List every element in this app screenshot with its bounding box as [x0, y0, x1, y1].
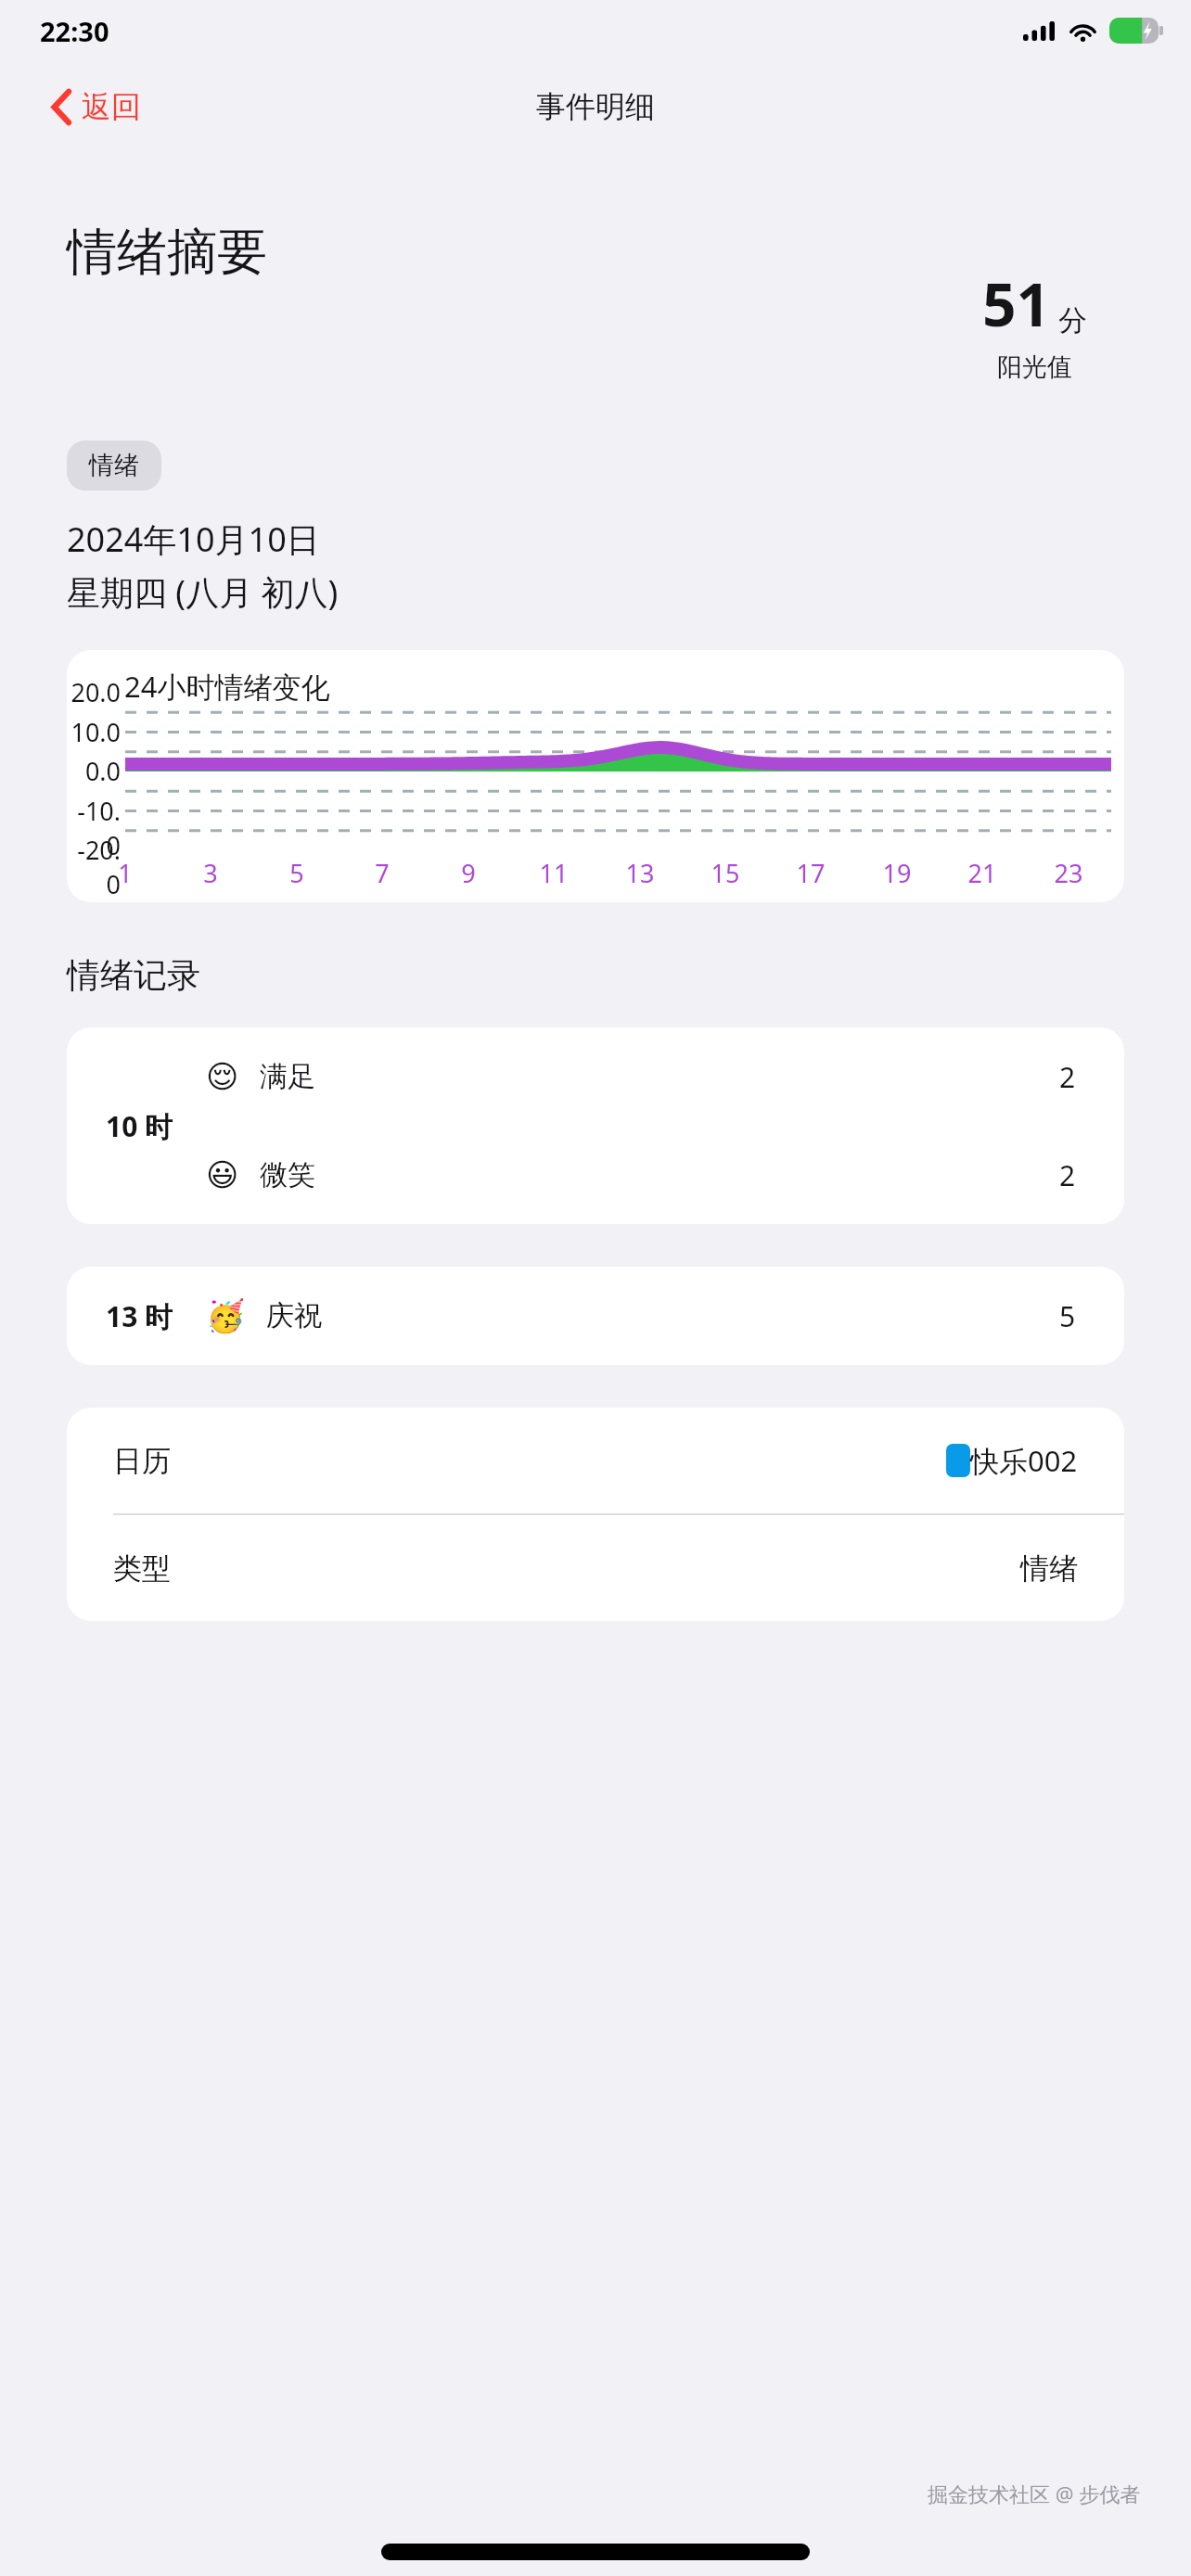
- staticText: 掘金技术社区 @ 步伐者: [928, 2480, 1141, 2507]
- staticText: 庆祝: [266, 1298, 322, 1333]
- other: Battery 67 percent, charging: [1109, 18, 1165, 44]
- staticText: 3: [186, 856, 235, 890]
- staticText: 13 时: [106, 1297, 173, 1335]
- staticText: 22:30: [40, 13, 109, 49]
- staticText: 21: [958, 856, 1006, 890]
- staticText: 日历: [113, 1443, 171, 1479]
- staticText: 24小时情绪变化: [124, 667, 330, 706]
- staticText: 微笑: [260, 1157, 315, 1192]
- staticText: 返回: [82, 88, 141, 125]
- staticText: 阳光值: [997, 351, 1072, 383]
- staticText: 10.0: [67, 715, 121, 749]
- staticText: 星期四 (八月 初八): [67, 569, 339, 615]
- staticText: 满足: [260, 1059, 315, 1094]
- staticText: 2: [1059, 1058, 1076, 1096]
- button[interactable]: 日历: [67, 1408, 1124, 1513]
- staticText: 情绪: [89, 450, 139, 481]
- staticText: 23: [1044, 856, 1093, 890]
- staticText: 9: [444, 856, 493, 890]
- staticText: 15: [701, 856, 749, 890]
- staticText: -20.0: [67, 833, 121, 901]
- staticText: 1: [101, 856, 149, 890]
- button[interactable]: 情绪: [67, 440, 161, 491]
- other: Cellular signal: [1023, 21, 1055, 41]
- staticText: 情绪: [1020, 1550, 1078, 1587]
- staticText: 5: [273, 856, 321, 890]
- staticText: 11: [530, 856, 578, 890]
- button[interactable]: 返回: [45, 81, 148, 133]
- staticText: 😌: [206, 1058, 239, 1095]
- button[interactable]: 24小时情绪变化: [67, 650, 1124, 902]
- button[interactable]: 😌: [67, 1027, 1124, 1126]
- staticText: 0.0: [67, 754, 121, 788]
- staticText: -10.0: [67, 794, 121, 862]
- staticText: 情绪记录: [67, 954, 200, 996]
- staticText: 事件明细: [536, 88, 655, 125]
- staticText: 😃: [206, 1156, 239, 1193]
- button[interactable]: 😃: [67, 1126, 1124, 1224]
- staticText: 10 时: [106, 1107, 173, 1145]
- staticText: 20.0: [67, 675, 121, 709]
- staticText: 17: [787, 856, 835, 890]
- staticText: 7: [358, 856, 406, 890]
- staticText: 分: [1058, 302, 1087, 338]
- staticText: 13: [616, 856, 664, 890]
- button[interactable]: 类型: [67, 1515, 1124, 1621]
- staticText: 🥳: [206, 1297, 246, 1334]
- staticText: 2024年10月10日: [67, 516, 320, 562]
- staticText: 19: [873, 856, 921, 890]
- staticText: 51: [982, 263, 1051, 344]
- staticText: 2: [1059, 1156, 1076, 1194]
- other: Wi-Fi: [1069, 20, 1097, 41]
- staticText: 类型: [113, 1550, 171, 1587]
- staticText: 情绪摘要: [67, 221, 267, 284]
- staticText: 快乐002: [970, 1441, 1078, 1480]
- button[interactable]: 🥳: [67, 1267, 1124, 1365]
- staticText: 5: [1059, 1297, 1076, 1335]
